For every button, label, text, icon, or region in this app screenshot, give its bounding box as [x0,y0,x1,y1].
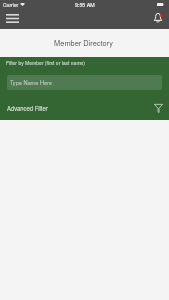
button[interactable]: Type Name Here [7,75,162,90]
staticText: Filter by Member (first or last name) [6,59,86,66]
button[interactable]: Open navigation menu [2,9,22,27]
staticText: Advanced Filter [7,104,48,112]
button[interactable]: Advanced Filter [0,95,169,121]
staticText: Carrier [3,1,19,8]
button[interactable]: Notifications [149,8,167,26]
staticText: Type Name Here [10,79,52,87]
staticText: Member Directory [54,38,113,49]
staticText: 9:55 AM [75,1,95,9]
